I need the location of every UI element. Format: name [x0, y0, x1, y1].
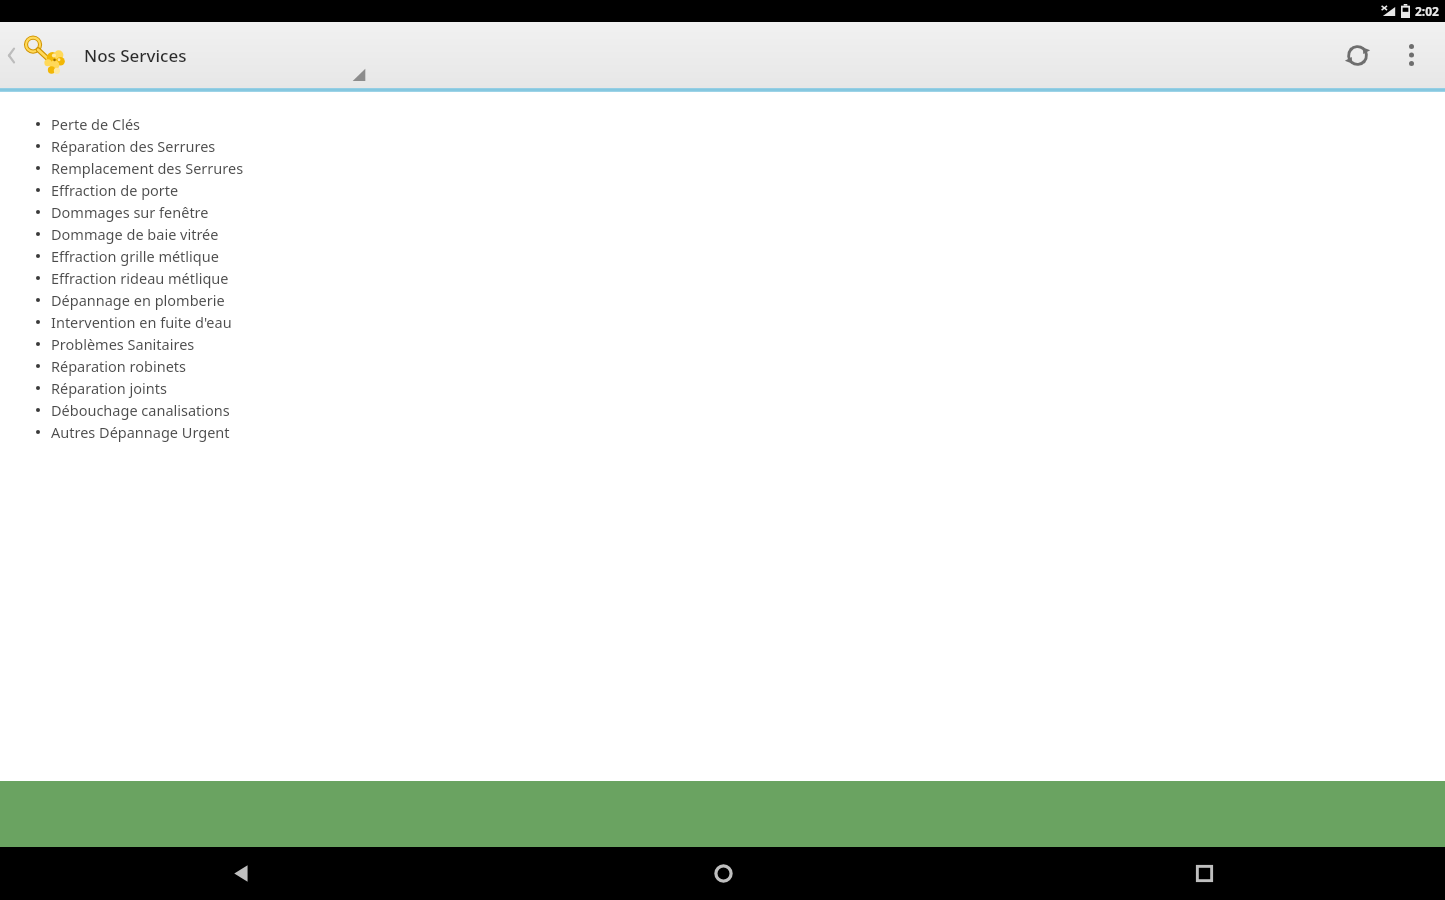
button[interactable]: Home [683, 847, 763, 900]
button[interactable]: Réparation joints [0, 377, 1445, 399]
staticText: Autres Dépannage Urgent [51, 422, 230, 442]
staticText: Effraction de porte [51, 180, 179, 200]
button[interactable]: Débouchage canalisations [0, 399, 1445, 421]
staticText: Effraction grille métlique [51, 246, 219, 266]
button[interactable]: Autres Dépannage Urgent [0, 421, 1445, 443]
staticText: Réparation robinets [51, 356, 187, 376]
button[interactable]: App icon [16, 26, 74, 84]
button[interactable]: Remplacement des Serrures [0, 157, 1445, 179]
button[interactable]: Back [2, 35, 20, 75]
button[interactable]: Problèmes Sanitaires [0, 333, 1445, 355]
button[interactable]: Perte de Clés [0, 113, 1445, 135]
button[interactable]: Réparation des Serrures [0, 135, 1445, 157]
staticText: Perte de Clés [51, 114, 141, 134]
staticText: Intervention en fuite d'eau [51, 312, 232, 332]
button[interactable]: Dommages sur fenêtre [0, 201, 1445, 223]
staticText: Dommage de baie vitrée [51, 224, 219, 244]
staticText: Effraction rideau métlique [51, 268, 229, 288]
button[interactable]: More options [1385, 29, 1437, 81]
button[interactable]: Dépannage en plomberie [0, 289, 1445, 311]
staticText: Remplacement des Serrures [51, 158, 244, 178]
button[interactable]: Dommage de baie vitrée [0, 223, 1445, 245]
staticText: 2:02 [1415, 3, 1439, 19]
button[interactable]: Recent apps [1164, 847, 1244, 900]
button[interactable]: Back [201, 847, 281, 900]
button[interactable]: Intervention en fuite d'eau [0, 311, 1445, 333]
button[interactable]: Effraction grille métlique [0, 245, 1445, 267]
staticText: Dommages sur fenêtre [51, 202, 209, 222]
button[interactable]: Refresh [1329, 27, 1385, 83]
button[interactable]: Effraction rideau métlique [0, 267, 1445, 289]
button[interactable]: Nos Services [84, 33, 187, 77]
button[interactable]: Réparation robinets [0, 355, 1445, 377]
staticText: Réparation des Serrures [51, 136, 216, 156]
button[interactable]: Effraction de porte [0, 179, 1445, 201]
staticText: Nos Services [84, 44, 187, 67]
staticText: Problèmes Sanitaires [51, 334, 195, 354]
staticText: Débouchage canalisations [51, 400, 230, 420]
staticText: Dépannage en plomberie [51, 290, 225, 310]
staticText: Réparation joints [51, 378, 167, 398]
